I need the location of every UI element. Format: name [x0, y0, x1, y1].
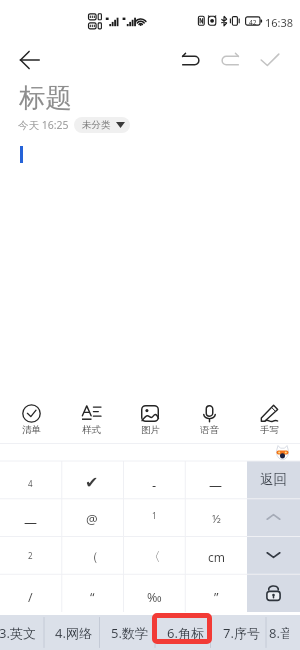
button[interactable]: / — [0, 574, 61, 612]
button[interactable]: Next page — [247, 536, 300, 574]
button[interactable]: （ — [61, 536, 123, 574]
staticText: 图片 — [141, 424, 160, 436]
staticText: 8.音标 — [269, 624, 289, 642]
button[interactable]: 语音 — [181, 398, 237, 442]
button[interactable]: 8.音标 — [269, 615, 289, 650]
staticText: 手写 — [260, 424, 279, 436]
button[interactable]: “ — [61, 574, 123, 612]
staticText: 清单 — [22, 424, 41, 436]
button[interactable]: 手写 — [241, 398, 297, 442]
button[interactable]: 〈 — [123, 536, 185, 574]
button[interactable]: 图片 — [122, 398, 178, 442]
staticText: （ — [86, 549, 99, 565]
button[interactable]: 未分类 — [74, 117, 130, 133]
staticText: 今天 16:25 — [18, 118, 69, 132]
button[interactable]: 4 — [0, 461, 61, 498]
staticText: 未分类 — [82, 119, 111, 131]
staticText: — — [209, 476, 223, 494]
staticText: 标题 — [19, 81, 72, 114]
button[interactable]: — — [185, 461, 247, 498]
staticText: “ — [90, 589, 95, 606]
staticText: ✔ — [85, 473, 99, 492]
staticText: 语音 — [200, 424, 219, 436]
button[interactable]: ✔ — [61, 461, 123, 498]
button[interactable]: Previous page — [247, 498, 300, 536]
staticText: — — [24, 513, 38, 531]
button[interactable]: 样式 — [63, 398, 119, 442]
button[interactable]: ” — [185, 574, 247, 612]
staticText: 返回 — [260, 471, 287, 488]
staticText: 4 — [28, 478, 33, 489]
staticText: 3.英文 — [0, 624, 36, 642]
button[interactable]: Back — [10, 40, 50, 80]
staticText: 5.数学 — [111, 624, 148, 642]
button[interactable]: 7.序号 — [213, 615, 269, 650]
button[interactable]: ‐ — [123, 461, 185, 498]
button[interactable]: 3.英文 — [0, 615, 45, 650]
button[interactable]: 清单 — [3, 398, 59, 442]
button[interactable]: Undo — [172, 42, 208, 78]
staticText: 2 — [28, 550, 33, 561]
button[interactable]: 5.数学 — [101, 615, 157, 650]
staticText: 1 — [152, 510, 157, 521]
staticText: / — [28, 589, 33, 606]
button[interactable]: — — [0, 498, 61, 536]
staticText: 4.网络 — [55, 624, 92, 642]
button[interactable]: 6.角标 — [157, 615, 213, 650]
button[interactable]: Done — [252, 42, 288, 78]
staticText: ” — [214, 589, 219, 606]
button[interactable]: Redo — [212, 42, 248, 78]
staticText: ½ — [212, 511, 221, 527]
staticText: ‐ — [152, 476, 157, 494]
staticText: 6.角标 — [167, 624, 204, 642]
button[interactable]: 4.网络 — [45, 615, 101, 650]
button[interactable]: 1 — [123, 498, 185, 536]
button[interactable]: @ — [61, 498, 123, 536]
staticText: @ — [86, 510, 98, 528]
staticText: cm — [208, 549, 225, 565]
button[interactable]: 返回 — [247, 461, 300, 498]
staticText: 〈 — [148, 549, 161, 565]
button[interactable]: Lock — [247, 574, 300, 612]
button[interactable]: cm — [185, 536, 247, 574]
button[interactable]: 2 — [0, 536, 61, 574]
staticText: 样式 — [82, 424, 101, 436]
staticText: 7.序号 — [223, 624, 260, 642]
button[interactable]: ½ — [185, 498, 247, 536]
button[interactable]: ‰ — [123, 574, 185, 612]
button[interactable]: Input method logo — [274, 443, 291, 461]
staticText: ‰ — [147, 589, 162, 606]
staticText: 42 — [249, 18, 257, 27]
staticText: 16:38 — [265, 15, 294, 30]
